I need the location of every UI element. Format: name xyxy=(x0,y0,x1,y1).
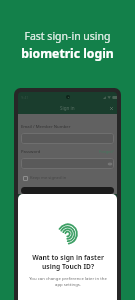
staticText: 9:41 xyxy=(21,95,29,100)
staticText: Want to sign in faster using Touch ID? xyxy=(32,253,104,271)
staticText: Email / Member Number xyxy=(21,124,71,130)
staticText: Keep me signed in xyxy=(30,175,67,181)
staticText: Password xyxy=(21,149,41,155)
staticText: Sign in xyxy=(60,105,75,111)
staticText: You can change preference later in the a… xyxy=(29,275,107,287)
button[interactable]: Keep me signed in xyxy=(23,175,67,181)
button[interactable] xyxy=(21,187,114,194)
staticText: biometric login xyxy=(21,45,114,62)
button[interactable]: Close xyxy=(109,106,114,111)
button[interactable]: Forgot? xyxy=(99,149,114,155)
button[interactable] xyxy=(21,158,114,169)
staticText: Fast sign-in using xyxy=(24,29,111,43)
button[interactable] xyxy=(21,133,114,144)
